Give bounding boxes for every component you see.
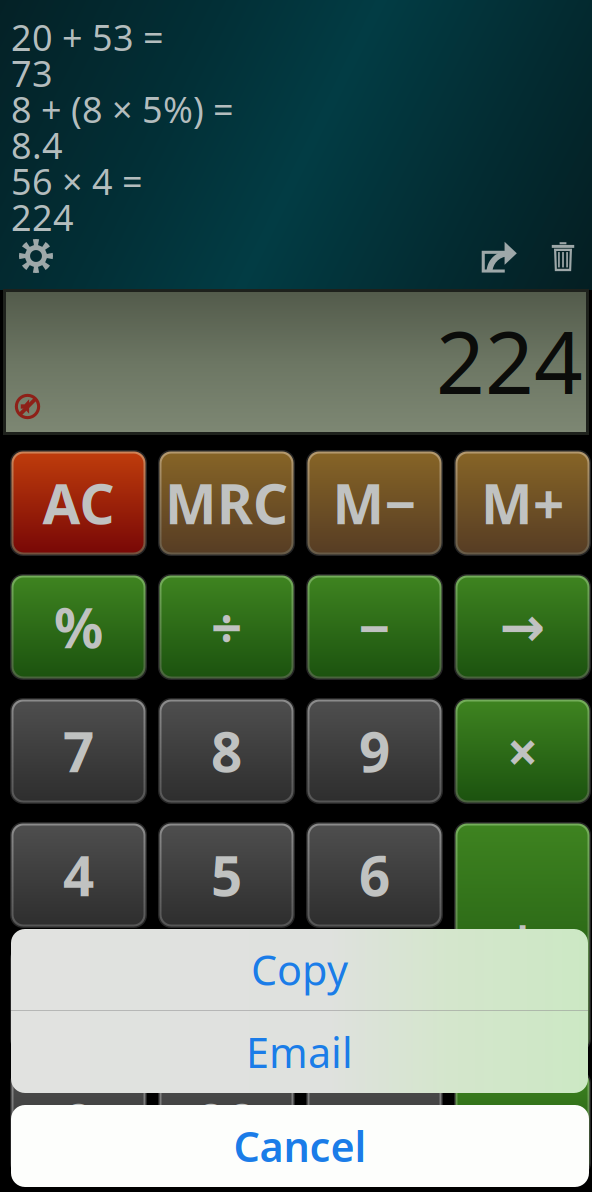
staticText: Cancel — [233, 1119, 366, 1173]
staticText: ÷ — [211, 591, 242, 663]
button[interactable]: M− — [306, 450, 443, 556]
button[interactable]: 1 — [10, 946, 147, 1052]
staticText: 73 — [11, 49, 53, 97]
button[interactable]: + — [454, 822, 591, 1052]
staticText: = — [507, 1087, 538, 1159]
staticText: 1 — [63, 963, 94, 1035]
staticText: 4 — [63, 839, 94, 911]
button[interactable]: . — [306, 1070, 443, 1176]
staticText: 8 — [211, 715, 242, 787]
staticText: 8.4 — [11, 121, 63, 169]
staticText: Email — [246, 1025, 353, 1079]
staticText: 8 + (8 × 5%) = — [11, 85, 234, 133]
staticText: 6 — [359, 839, 390, 911]
staticText: AC — [42, 467, 114, 539]
staticText: 3 — [359, 963, 390, 1035]
button[interactable]: × — [454, 698, 591, 804]
button[interactable]: Cancel — [11, 1105, 589, 1187]
button[interactable]: MRC — [158, 450, 295, 556]
button[interactable]: 8 — [158, 698, 295, 804]
button[interactable]: 7 — [10, 698, 147, 804]
button[interactable]: 9 — [306, 698, 443, 804]
staticText: → — [499, 596, 545, 658]
button[interactable]: → — [454, 574, 591, 680]
staticText: 56 × 4 = — [11, 157, 143, 205]
button[interactable]: 00 — [158, 1070, 295, 1176]
button[interactable]: = — [454, 1070, 591, 1176]
staticText: 9 — [359, 715, 390, 787]
button[interactable]: ÷ — [158, 574, 295, 680]
button[interactable]: 4 — [10, 822, 147, 928]
staticText: × — [507, 715, 538, 787]
staticText: M− — [332, 467, 416, 539]
staticText: % — [54, 591, 103, 663]
staticText: 7 — [63, 715, 94, 787]
staticText: 224 — [11, 193, 74, 241]
staticText: . — [367, 1087, 382, 1159]
staticText: 0 — [63, 1087, 94, 1159]
staticText: Copy — [251, 942, 348, 997]
staticText: + — [507, 901, 538, 973]
staticText: 00 — [195, 1087, 257, 1159]
staticText: 20 + 53 = — [11, 13, 164, 61]
button[interactable]: 6 — [306, 822, 443, 928]
staticText: 5 — [211, 839, 242, 911]
staticText: 224 — [436, 304, 583, 418]
button[interactable]: AC — [10, 450, 147, 556]
staticText: M+ — [481, 467, 564, 539]
button[interactable]: Share — [459, 234, 539, 278]
button[interactable]: M+ — [454, 450, 591, 556]
staticText: − — [358, 591, 390, 663]
button[interactable]: Email — [11, 1011, 588, 1093]
staticText: 2 — [211, 963, 242, 1035]
button[interactable]: Copy — [11, 929, 588, 1010]
button[interactable]: % — [10, 574, 147, 680]
button[interactable]: 0 — [10, 1070, 147, 1176]
button[interactable]: 2 — [158, 946, 295, 1052]
staticText: MRC — [165, 467, 288, 539]
button[interactable]: 3 — [306, 946, 443, 1052]
button[interactable]: Clear history — [539, 234, 587, 278]
button[interactable]: − — [306, 574, 443, 680]
button[interactable]: 5 — [158, 822, 295, 928]
button[interactable]: Settings — [5, 234, 67, 278]
